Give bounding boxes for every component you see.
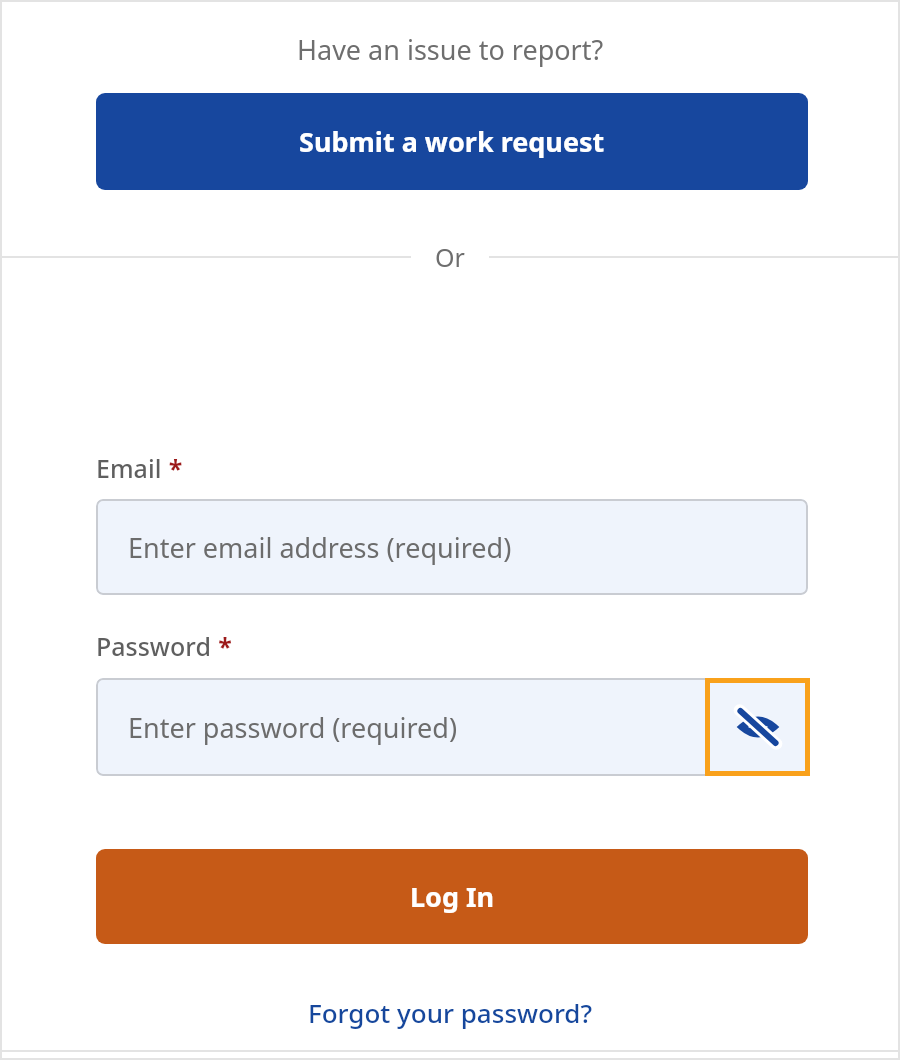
staticText: Password * <box>96 629 232 663</box>
staticText: Email * <box>96 451 183 485</box>
staticText: Forgot your password? <box>308 995 593 1030</box>
staticText: Or <box>435 240 465 274</box>
button[interactable]: Forgot your password? <box>300 991 601 1034</box>
button[interactable]: Enter email address (required) <box>96 499 808 595</box>
staticText: Enter password (required) <box>128 709 457 746</box>
staticText: Log In <box>410 878 495 915</box>
staticText: Enter email address (required) <box>128 529 512 566</box>
button[interactable]: Submit a work request <box>96 93 808 190</box>
button[interactable]: Show password <box>705 678 810 776</box>
staticText: Have an issue to report? <box>297 31 604 68</box>
staticText: Submit a work request <box>299 123 605 160</box>
button[interactable]: Log In <box>96 849 808 944</box>
button[interactable]: Enter password (required) <box>96 678 808 776</box>
